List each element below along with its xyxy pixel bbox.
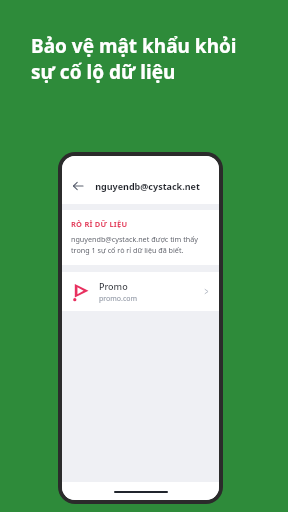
staticText: nguyendb@cystack.net: [95, 180, 200, 192]
staticText: RÒ RỈ DỮ LIỆU: [71, 219, 128, 229]
staticText: Promo: [99, 280, 128, 292]
staticText: Bảo vệ mật khẩu khỏi: [31, 33, 237, 59]
staticText: nguyendb@cystack.net được tìm thấy trong…: [71, 234, 210, 255]
staticText: promo.com: [99, 294, 138, 304]
button[interactable]: Promo: [62, 272, 219, 311]
button[interactable]: Back: [67, 175, 89, 197]
staticText: sự cố lộ dữ liệu: [31, 59, 176, 85]
